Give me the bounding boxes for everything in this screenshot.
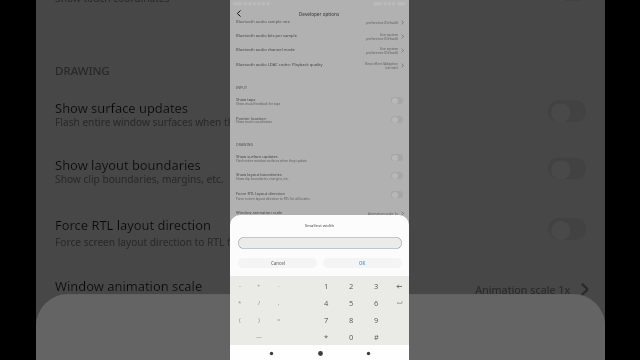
button[interactable]: 2 <box>339 278 364 294</box>
button[interactable]: ( <box>230 311 249 328</box>
button[interactable]: 8 <box>339 311 364 328</box>
staticText: Animation scale 1x <box>368 211 398 216</box>
button[interactable]: 3 <box>364 278 389 294</box>
staticText: Show surface updates <box>236 154 278 160</box>
staticText: Show clip boundaries, margins, etc. <box>55 173 532 186</box>
button[interactable]: Show taps <box>230 94 409 109</box>
button[interactable]: Show layout boundaries <box>36 148 605 199</box>
button[interactable]: 6 <box>364 294 389 311</box>
button[interactable]: Bluetooth audio LDAC codec: Playback qua… <box>230 58 409 72</box>
button[interactable]: Pointer location <box>36 0 605 17</box>
button[interactable]: Bluetooth audio bits per sample <box>230 29 409 43</box>
staticText: Bluetooth audio bits per sample <box>236 33 346 39</box>
staticText: Force RTL layout direction <box>55 218 211 237</box>
button[interactable]: Back <box>264 346 278 360</box>
staticText: — <box>256 333 263 341</box>
staticText: 0 <box>349 332 354 342</box>
button[interactable]: Enter <box>389 294 409 311</box>
staticText: ( <box>239 316 241 324</box>
staticText: Window animation scale <box>236 210 346 216</box>
staticText: Force screen layout direction to RTL for… <box>55 237 532 250</box>
button[interactable]: Bluetooth audio channel mode <box>230 43 409 57</box>
button[interactable]: Force RTL layout direction <box>36 208 605 259</box>
staticText: Smallest width <box>230 223 409 229</box>
button[interactable]: 7 <box>314 311 339 328</box>
button[interactable]: * <box>230 294 249 311</box>
staticText: = <box>277 316 281 324</box>
button[interactable]: 5 <box>339 294 364 311</box>
staticText: / <box>258 299 261 307</box>
button[interactable]: Recents <box>361 346 375 360</box>
button[interactable]: = <box>269 311 289 328</box>
staticText: 7 <box>324 315 329 325</box>
staticText: Show visual feedback for taps <box>236 102 386 106</box>
staticText: Developer options <box>299 11 340 17</box>
staticText: * <box>324 332 329 342</box>
button[interactable]: — <box>249 328 269 345</box>
staticText: Pointer location <box>236 116 267 122</box>
button[interactable]: Window animation scale <box>230 206 409 220</box>
staticText: Show taps <box>236 97 256 103</box>
button[interactable]: * <box>314 328 339 345</box>
staticText: Flash entire window surfaces when they u… <box>236 159 386 163</box>
button[interactable]: Cancel <box>238 258 317 268</box>
staticText: Best effort (Adaptive bit rate) <box>365 61 398 70</box>
staticText: 5 <box>349 298 354 308</box>
staticText: , <box>278 299 280 307</box>
staticText: DRAWING <box>236 142 254 147</box>
staticText: Force RTL layout direction <box>236 191 285 197</box>
button[interactable]: # <box>364 328 389 345</box>
staticText: Cancel <box>271 260 285 266</box>
staticText: 3 <box>374 281 379 291</box>
button[interactable]: 9 <box>364 311 389 328</box>
button[interactable]: + <box>249 278 269 294</box>
button[interactable]: Force RTL layout direction <box>230 188 409 204</box>
staticText: * <box>238 299 242 307</box>
button[interactable]: Bluetooth audio sample rate <box>230 20 409 29</box>
button[interactable]: Show surface updates <box>36 91 605 138</box>
staticText: Bluetooth audio channel mode <box>236 47 346 53</box>
button[interactable]: 4 <box>314 294 339 311</box>
staticText: OK <box>359 260 366 266</box>
staticText: 4 <box>324 298 329 308</box>
staticText: Show layout boundaries <box>55 157 201 176</box>
button[interactable]: Backspace <box>389 278 409 294</box>
staticText: Use system preference (Default) <box>366 46 398 55</box>
button[interactable]: OK <box>323 258 402 268</box>
button[interactable]: / <box>249 294 269 311</box>
staticText: Show touch coordinates <box>55 0 532 5</box>
staticText: 8 <box>349 315 354 325</box>
button[interactable]: 0 <box>339 328 364 345</box>
staticText: Bluetooth audio sample rate <box>236 20 346 25</box>
staticText: - <box>239 282 241 290</box>
staticText: 9 <box>374 315 379 325</box>
button[interactable]: Home <box>313 346 327 360</box>
button[interactable]: Show layout boundaries <box>230 169 409 185</box>
staticText: · <box>278 282 280 290</box>
button[interactable]: Window animation scale <box>36 265 605 310</box>
staticText: Window animation scale <box>55 278 405 297</box>
staticText: Smallest width <box>36 319 605 339</box>
staticText: Animation scale 1x <box>475 281 570 297</box>
staticText: Bluetooth audio LDAC codec: Playback qua… <box>236 62 346 68</box>
staticText: DRAWING <box>55 62 112 78</box>
staticText: INPUT <box>236 85 247 90</box>
staticText: 2 <box>349 281 354 291</box>
staticText: 6 <box>374 298 379 308</box>
staticText: 1 <box>324 281 329 291</box>
button[interactable]: 1 <box>314 278 339 294</box>
button[interactable]: Back <box>234 9 243 18</box>
staticText: Force screen layout direction to RTL for… <box>236 197 386 201</box>
button[interactable]: Show surface updates <box>230 151 409 166</box>
button[interactable]: ) <box>249 311 269 328</box>
button[interactable]: Pointer location <box>230 113 409 128</box>
staticText: Use system preference (Default) <box>366 32 398 41</box>
staticText: + <box>257 282 261 290</box>
